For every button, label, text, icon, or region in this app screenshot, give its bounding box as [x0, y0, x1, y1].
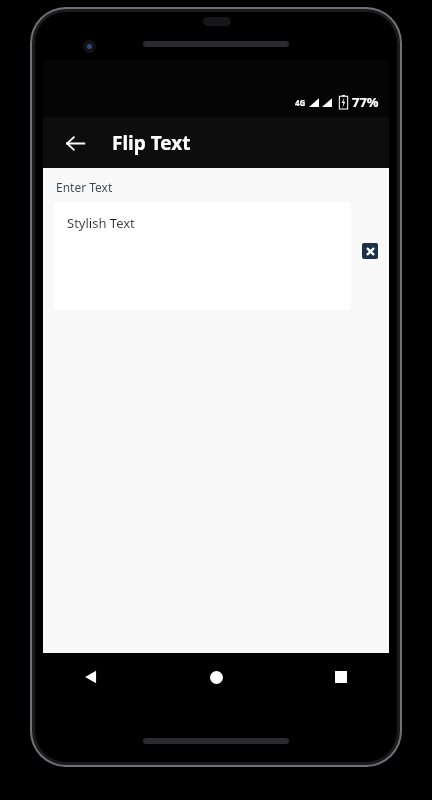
staticText: Stylish Text: [67, 214, 135, 232]
staticText: 4G: [295, 97, 306, 108]
button[interactable]: Clear text: [362, 243, 378, 259]
button[interactable]: Back: [55, 123, 95, 163]
staticText: Enter Text: [56, 179, 113, 195]
staticText: 77%: [352, 93, 379, 111]
button[interactable]: Recents: [323, 659, 359, 695]
button[interactable]: Stylish Text: [54, 202, 351, 310]
button[interactable]: Back: [73, 659, 109, 695]
staticText: Flip Text: [112, 130, 191, 156]
button[interactable]: Home: [198, 659, 234, 695]
